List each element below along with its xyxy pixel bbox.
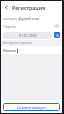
staticText: example (3, 16, 18, 21)
button[interactable]: Пароль (1, 22, 62, 30)
staticText: @gmail.com (18, 16, 40, 21)
staticText: Контактные данные (3, 41, 33, 45)
button[interactable]: example (1, 14, 62, 22)
staticText: Пароль (3, 24, 54, 29)
staticText: Иванов (3, 48, 17, 53)
button[interactable]: Создать аккаунт (3, 103, 60, 111)
staticText: Регистрация (12, 4, 46, 11)
button[interactable]: 01.01.2000 (3, 32, 52, 39)
staticText: 01.01.2000 (19, 33, 37, 38)
staticText: Создать аккаунт (17, 105, 46, 110)
button[interactable]: Pick date (54, 32, 60, 38)
button[interactable]: Иванов (1, 46, 62, 54)
button[interactable]: Show password (54, 23, 60, 29)
button[interactable]: Back (1, 2, 12, 13)
